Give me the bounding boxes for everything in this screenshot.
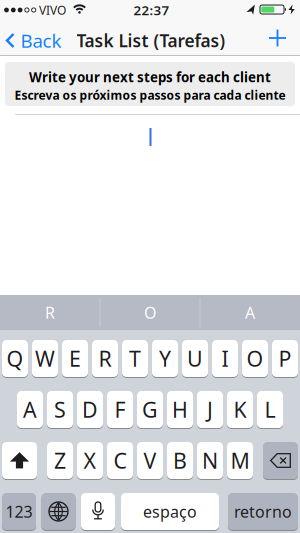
- button[interactable]: Z: [47, 442, 73, 479]
- staticText: espaço: [143, 501, 197, 522]
- staticText: E: [69, 344, 81, 373]
- staticText: C: [113, 446, 126, 475]
- staticText: H: [172, 395, 188, 424]
- staticText: A: [245, 302, 255, 323]
- staticText: R: [45, 302, 55, 323]
- staticText: G: [142, 395, 158, 424]
- button[interactable]: Return: [228, 493, 298, 530]
- staticText: U: [187, 344, 203, 373]
- staticText: Y: [159, 344, 171, 373]
- staticText: Q: [6, 344, 23, 373]
- button[interactable]: V: [137, 442, 163, 479]
- staticText: Z: [54, 446, 66, 475]
- staticText: VIVO: [39, 2, 66, 18]
- button[interactable]: G: [137, 391, 163, 428]
- button[interactable]: Q: [2, 340, 28, 377]
- button[interactable]: R: [92, 340, 118, 377]
- staticText: V: [143, 446, 156, 475]
- button[interactable]: A: [202, 295, 298, 330]
- staticText: D: [82, 395, 98, 424]
- button[interactable]: F: [107, 391, 133, 428]
- staticText: A: [23, 395, 37, 424]
- button[interactable]: P: [272, 340, 298, 377]
- button[interactable]: E: [62, 340, 88, 377]
- button[interactable]: K: [227, 391, 253, 428]
- staticText: O: [144, 302, 156, 323]
- staticText: P: [278, 344, 291, 373]
- staticText: X: [83, 446, 96, 475]
- button[interactable]: C: [107, 442, 133, 479]
- staticText: 22:37: [133, 1, 169, 19]
- button[interactable]: T: [122, 340, 148, 377]
- button[interactable]: Y: [152, 340, 178, 377]
- button[interactable]: Dictate: [81, 493, 115, 530]
- staticText: Escreva os próximos passos para cada cli…: [14, 87, 285, 103]
- button[interactable]: M: [227, 442, 253, 479]
- button[interactable]: W: [32, 340, 58, 377]
- staticText: I: [221, 344, 228, 373]
- staticText: O: [246, 344, 263, 373]
- staticText: R: [98, 344, 111, 373]
- staticText: B: [173, 446, 187, 475]
- button[interactable]: L: [257, 391, 283, 428]
- button[interactable]: O: [242, 340, 268, 377]
- staticText: Task List (Tarefas): [76, 29, 225, 52]
- staticText: L: [264, 395, 275, 424]
- staticText: retorno: [234, 501, 292, 522]
- button[interactable]: U: [182, 340, 208, 377]
- staticText: M: [230, 446, 249, 475]
- button[interactable]: Add: [269, 29, 286, 46]
- staticText: S: [54, 395, 66, 424]
- button[interactable]: H: [167, 391, 193, 428]
- button[interactable]: Shift: [2, 442, 37, 479]
- button[interactable]: I: [212, 340, 238, 377]
- staticText: W: [35, 344, 55, 373]
- button[interactable]: J: [197, 391, 223, 428]
- staticText: F: [114, 395, 125, 424]
- button[interactable]: N: [197, 442, 223, 479]
- staticText: J: [207, 395, 213, 424]
- button[interactable]: D: [77, 391, 103, 428]
- button[interactable]: O: [102, 295, 198, 330]
- button[interactable]: Back: [5, 28, 61, 53]
- staticText: K: [233, 395, 246, 424]
- button[interactable]: Space: [121, 493, 219, 530]
- button[interactable]: B: [167, 442, 193, 479]
- staticText: T: [129, 344, 141, 373]
- button[interactable]: A: [17, 391, 43, 428]
- staticText: 123: [5, 501, 32, 522]
- button[interactable]: Numbers: [2, 493, 36, 530]
- button[interactable]: X: [77, 442, 103, 479]
- staticText: Back: [20, 28, 61, 53]
- button[interactable]: S: [47, 391, 73, 428]
- button[interactable]: R: [2, 295, 98, 330]
- button[interactable]: Delete: [263, 442, 298, 479]
- staticText: N: [202, 446, 218, 475]
- staticText: Write your next steps for each client: [29, 68, 271, 86]
- button[interactable]: Next keyboard: [41, 493, 75, 530]
